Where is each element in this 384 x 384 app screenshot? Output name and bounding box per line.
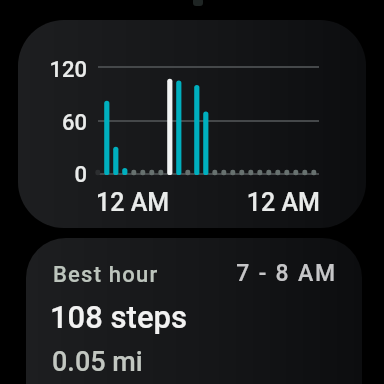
staticText: 108 steps	[50, 299, 270, 335]
staticText: 12 AM	[235, 188, 320, 217]
staticText: 0.05 mi	[52, 346, 232, 378]
staticText: 120	[37, 57, 87, 83]
staticText: 60	[37, 110, 87, 136]
staticText: 0	[37, 162, 87, 188]
staticText: Best hour	[53, 262, 223, 288]
button[interactable]: 120	[18, 20, 366, 228]
button[interactable]: Best hour	[26, 238, 362, 384]
staticText: 12 AM	[96, 188, 216, 217]
staticText: 7 - 8 AM	[199, 260, 337, 287]
